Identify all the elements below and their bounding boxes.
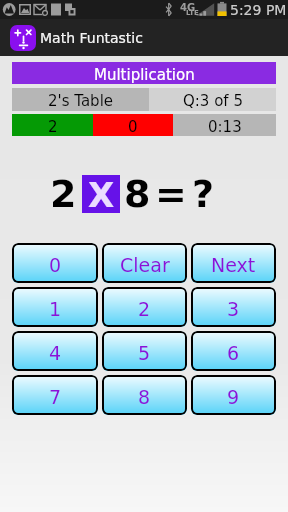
staticText: 9 [227,386,240,408]
button[interactable]: 2 [102,287,187,327]
button[interactable]: 2's Table [12,88,149,111]
staticText: Next [211,254,256,276]
staticText: 7 [49,386,62,408]
staticText: 8 [138,386,151,408]
staticText: 2 [48,118,58,135]
button[interactable]: 3 [191,287,276,327]
staticText: 2's Table [48,92,114,109]
staticText: 3 [227,298,240,320]
staticText: 0 [128,118,138,135]
staticText: 8 [124,172,151,216]
staticText: = [155,172,187,216]
staticText: 0 [49,254,62,276]
button[interactable]: Multiplication [12,62,276,84]
staticText: 5:29 PM [230,2,287,18]
button[interactable]: 8 [102,375,187,415]
button[interactable]: 0 [12,243,98,283]
button[interactable]: 9 [191,375,276,415]
staticText: X [88,175,115,213]
staticText: Math Funtastic [40,30,143,46]
staticText: 6 [227,342,240,364]
button[interactable]: Q:3 of 5 [149,88,276,111]
button[interactable]: 5 [102,331,187,371]
button[interactable]: 4 [12,331,98,371]
button[interactable]: Clear [102,243,187,283]
staticText: 2 [50,172,77,216]
staticText: 2 [138,298,151,320]
staticText: Q:3 of 5 [183,92,243,109]
staticText: 4 [49,342,62,364]
staticText: 1 [49,298,62,320]
staticText: Multiplication [94,66,195,83]
staticText: LTE [186,9,199,17]
staticText: ? [192,172,215,216]
other: Math Funtastic app icon [10,25,36,51]
staticText: 4G [180,2,196,14]
button[interactable]: 1 [12,287,98,327]
button[interactable]: 7 [12,375,98,415]
button[interactable]: 6 [191,331,276,371]
button[interactable]: Next [191,243,276,283]
staticText: Clear [120,254,170,276]
staticText: 0:13 [208,118,242,135]
staticText: 5 [138,342,151,364]
